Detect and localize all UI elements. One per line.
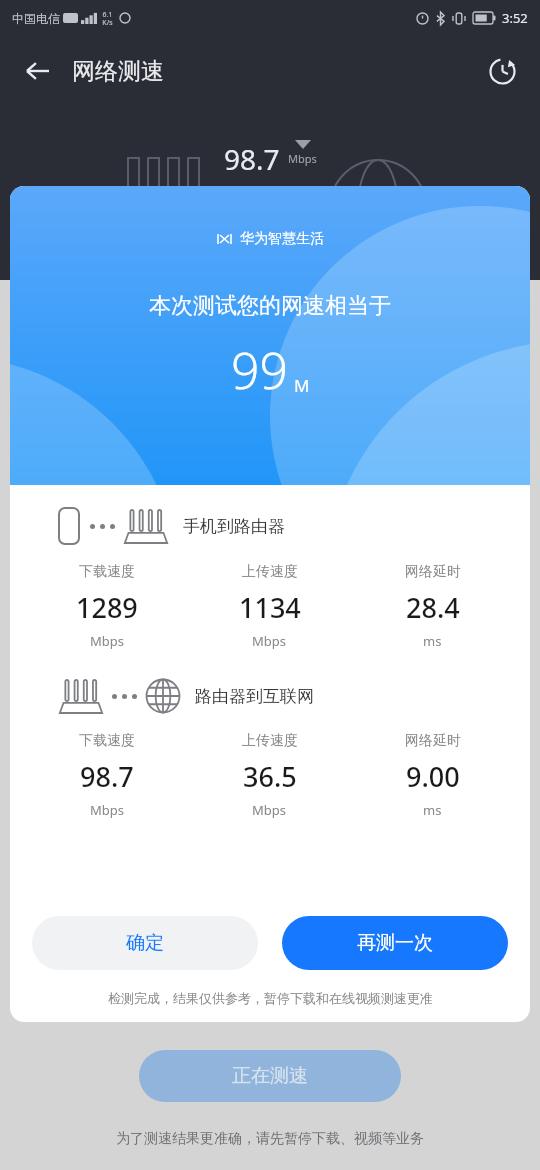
staticText: 1289 [76,589,138,626]
staticText: 正在测速 [232,1064,308,1088]
staticText: 上传速度 [242,732,298,750]
staticText: 再测一次 [357,931,433,955]
button[interactable]: History [480,49,524,93]
staticText: 9.00 [406,758,460,795]
staticText: 上传速度 [242,563,298,581]
staticText: Mbps [90,801,125,819]
staticText: ms [423,801,442,819]
staticText: Mbps [252,801,287,819]
staticText: 检测完成，结果仅供参考，暂停下载和在线视频测速更准 [108,990,433,1006]
staticText: 网络测速 [72,57,164,86]
staticText: 网络延时 [405,732,461,750]
button[interactable]: 确定 [32,916,258,970]
staticText: 3:52 [502,9,528,27]
staticText: 路由器到互联网 [195,686,314,707]
staticText: 确定 [126,931,164,955]
staticText: 28.4 [406,589,460,626]
staticText: 为了测速结果更准确，请先暂停下载、视频等业务 [116,1130,424,1148]
staticText: Mbps [252,632,287,650]
staticText: ms [423,632,442,650]
staticText: 1134 [239,589,301,626]
button[interactable]: 再测一次 [282,916,508,970]
staticText: Mbps [90,632,125,650]
staticText: 36.5 [243,758,297,795]
staticText: 99 [231,336,289,404]
staticText: 下载速度 [79,563,135,581]
staticText: 6.1 K/s [102,10,113,27]
staticText: 98.7 [80,758,134,795]
button[interactable]: Back [16,49,60,93]
staticText: M [294,374,310,397]
staticText: 98.7 [224,140,280,178]
staticText: Mbps [288,151,317,166]
staticText: 华为智慧生活 [240,230,324,248]
staticText: 网络延时 [405,563,461,581]
staticText: 本次测试您的网速相当于 [149,292,391,320]
button[interactable]: 正在测速 [139,1050,401,1102]
staticText: 中国电信 [12,11,60,26]
staticText: 下载速度 [79,732,135,750]
staticText: 手机到路由器 [183,516,285,537]
